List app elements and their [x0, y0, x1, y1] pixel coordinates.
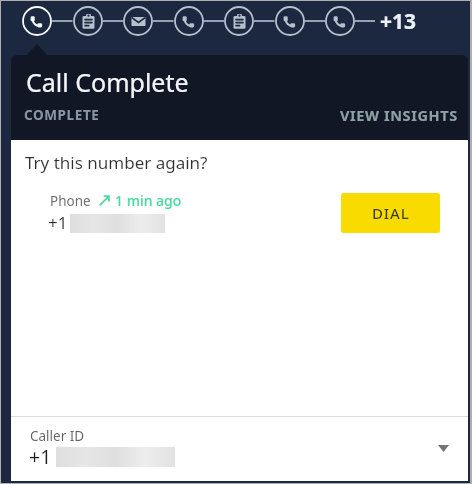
staticText: DIAL	[372, 203, 410, 223]
staticText: +1	[29, 443, 52, 470]
button[interactable]: Step 1	[22, 6, 52, 36]
staticText: Phone	[50, 192, 91, 210]
staticText: Call Complete	[26, 65, 189, 99]
button[interactable]: Caller ID	[11, 417, 468, 481]
staticText: Try this number again?	[25, 151, 208, 174]
staticText: VIEW INSIGHTS	[340, 105, 458, 125]
staticText: +1	[48, 211, 68, 234]
staticText: +13	[380, 7, 417, 36]
staticText: COMPLETE	[24, 106, 100, 124]
staticText: 1 min ago	[115, 191, 182, 210]
button[interactable]: VIEW INSIGHTS	[330, 99, 468, 131]
button[interactable]: Step 3	[123, 6, 153, 36]
button[interactable]: Step 7	[325, 6, 355, 36]
button[interactable]: DIAL	[341, 193, 440, 233]
button[interactable]: Step 6	[275, 6, 305, 36]
button[interactable]: Step 5	[224, 6, 254, 36]
button[interactable]: COMPLETE	[18, 100, 106, 130]
button[interactable]: Step 4	[174, 6, 204, 36]
staticText: Caller ID	[30, 427, 85, 445]
other: Expand caller ID	[438, 445, 449, 452]
button[interactable]: Step 2	[73, 6, 103, 36]
